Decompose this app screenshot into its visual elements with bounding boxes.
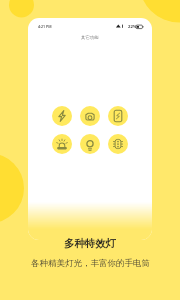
staticText: 其它功能: [81, 35, 99, 41]
staticText: 多种特效灯: [64, 237, 116, 250]
staticText: 22%: [128, 24, 137, 30]
button[interactable]: Flash strobe: [52, 106, 72, 126]
button[interactable]: SOS signal: [108, 106, 128, 126]
staticText: 各种精美灯光，丰富你的手电筒: [31, 258, 150, 269]
button[interactable]: Police siren: [52, 134, 72, 154]
button[interactable]: Camera light: [80, 106, 100, 126]
button[interactable]: Screen light: [80, 134, 100, 154]
staticText: 4:21 PM: [38, 24, 52, 29]
button[interactable]: Traffic light: [108, 134, 128, 154]
